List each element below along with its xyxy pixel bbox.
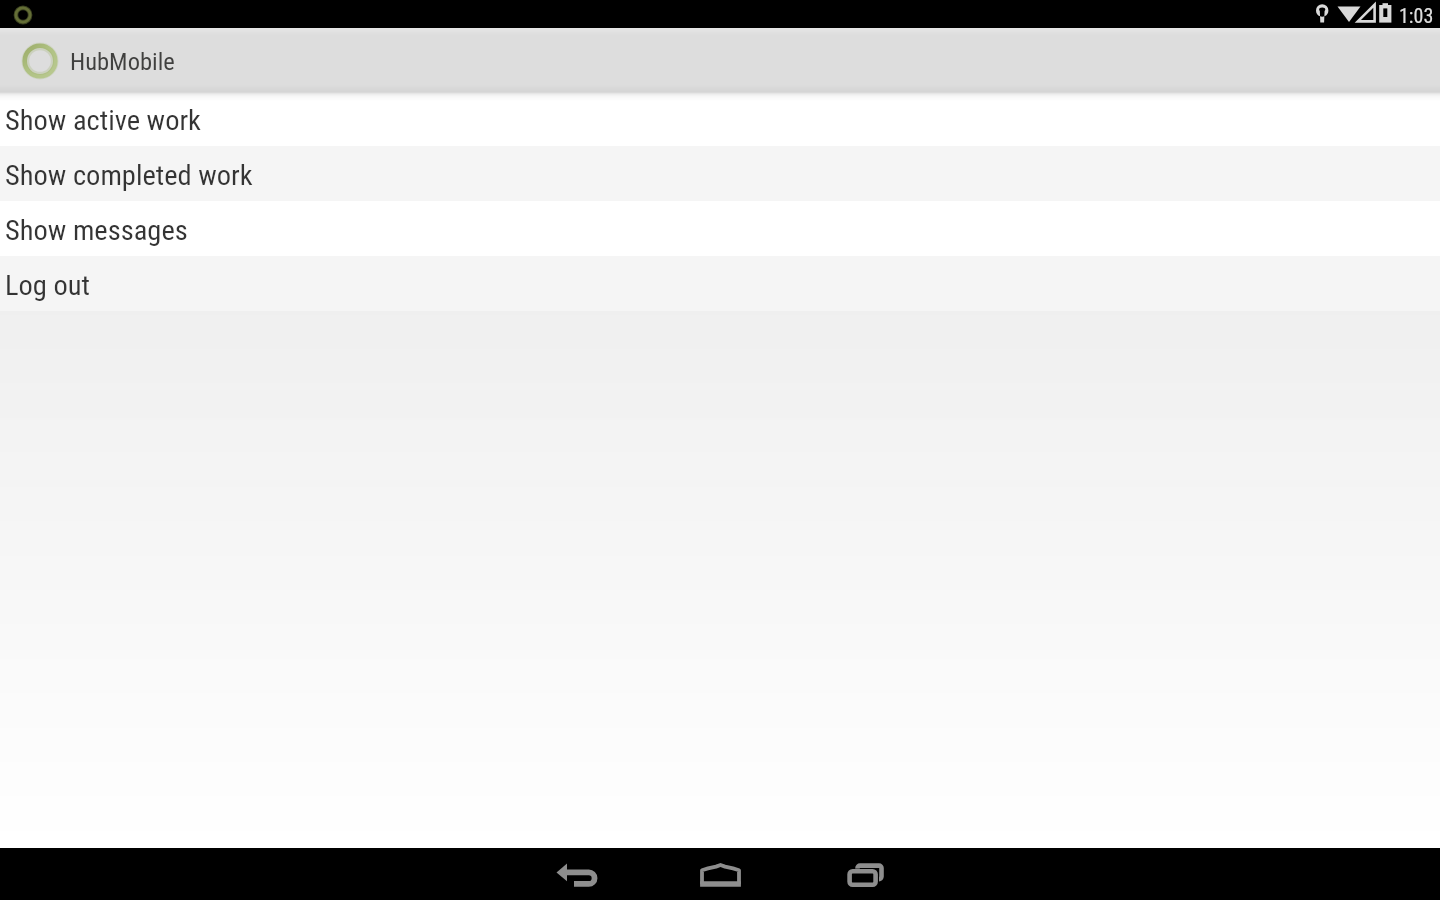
staticText: 1:03 (1399, 4, 1434, 27)
button[interactable]: Show messages (0, 201, 1440, 256)
button[interactable]: Home (673, 848, 769, 900)
staticText: Show messages (5, 214, 188, 247)
staticText: Log out (5, 269, 90, 302)
staticText: Show completed work (5, 159, 253, 192)
button[interactable]: Show completed work (0, 146, 1440, 201)
button[interactable]: Recent apps (818, 848, 914, 900)
button[interactable]: Log out (0, 256, 1440, 311)
button[interactable]: Show active work (0, 91, 1440, 146)
button[interactable]: Back (527, 848, 623, 900)
staticText: Show active work (5, 104, 201, 137)
staticText: HubMobile (70, 47, 175, 76)
